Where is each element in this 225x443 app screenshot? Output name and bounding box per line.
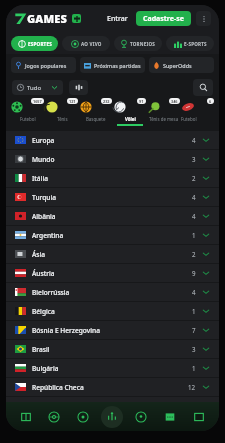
button[interactable]: Ásia xyxy=(6,245,219,263)
button[interactable]: SuperOdds xyxy=(149,57,214,73)
staticText: República Checa xyxy=(32,383,84,392)
staticText: 4 xyxy=(192,193,196,201)
staticText: 7 xyxy=(192,326,196,334)
button[interactable]: Brasil xyxy=(6,340,219,358)
button[interactable]: Apostas xyxy=(126,402,155,431)
staticText: 3 xyxy=(192,345,196,353)
staticText: Bósnia E Herzegovina xyxy=(32,326,100,335)
button[interactable]: Esportes xyxy=(68,402,97,431)
staticText: Basquete xyxy=(86,116,106,122)
button[interactable]: 232 xyxy=(79,98,113,131)
button[interactable]: Ao vivo xyxy=(40,402,68,431)
staticText: 1 xyxy=(192,231,196,239)
button[interactable]: República Checa xyxy=(6,378,219,396)
staticText: 1 xyxy=(192,364,196,372)
staticText: 4 xyxy=(192,212,196,220)
staticText: Ásia xyxy=(32,250,46,259)
staticText: Bulgária xyxy=(32,364,59,373)
staticText: SuperOdds xyxy=(163,62,192,69)
button[interactable]: Mais xyxy=(184,402,213,431)
staticText: Argentina xyxy=(32,231,64,240)
staticText: Bielorrússia xyxy=(32,288,70,297)
staticText: 91 xyxy=(139,99,144,104)
staticText: 12 xyxy=(188,383,196,391)
button[interactable]: Promoções xyxy=(72,14,81,23)
button[interactable]: 6 xyxy=(181,98,215,131)
button[interactable]: Albânia xyxy=(6,207,219,225)
staticText: Bélgica xyxy=(32,307,55,316)
staticText: Itália xyxy=(32,174,48,183)
button[interactable]: Filtros xyxy=(69,80,88,95)
staticText: TORNEIOS xyxy=(130,41,156,47)
button[interactable]: Chat xyxy=(155,402,184,431)
button[interactable]: Tudo xyxy=(12,80,63,95)
button[interactable]: Entrar xyxy=(103,11,132,27)
staticText: Turquia xyxy=(32,193,56,202)
staticText: 1 xyxy=(192,307,196,315)
staticText: Mundo xyxy=(32,155,55,164)
staticText: Brasil xyxy=(32,345,50,354)
button[interactable]: Turquia xyxy=(6,188,219,206)
staticText: 1657 xyxy=(33,99,42,104)
staticText: 2 xyxy=(192,174,196,182)
staticText: 346 xyxy=(171,99,178,104)
staticText: Futebol xyxy=(20,116,36,122)
button[interactable]: 121 xyxy=(45,98,79,131)
button[interactable]: Jogos populares xyxy=(11,57,76,73)
button[interactable]: Europa xyxy=(6,131,219,149)
staticText: 4 xyxy=(192,288,196,296)
button[interactable]: E-SPORTS xyxy=(166,36,214,51)
button[interactable]: Bulgária xyxy=(6,359,219,377)
button[interactable]: Estônia xyxy=(6,397,219,415)
staticText: 3 xyxy=(192,155,196,163)
button[interactable]: Itália xyxy=(6,169,219,187)
button[interactable]: Áustria xyxy=(6,264,219,282)
staticText: Tênis xyxy=(57,116,68,122)
staticText: Jogos populares xyxy=(25,62,67,69)
staticText: Futebol Americano xyxy=(181,116,215,122)
button[interactable]: Menu xyxy=(196,11,211,26)
button[interactable]: Destaques xyxy=(97,402,126,431)
button[interactable]: 1657 xyxy=(10,98,45,131)
staticText: 9 xyxy=(192,269,196,277)
staticText: Tudo xyxy=(27,84,42,92)
staticText: Cadastre-se xyxy=(143,14,184,24)
button[interactable]: Bósnia E Herzegovina xyxy=(6,321,219,339)
staticText: ESPORTES xyxy=(28,41,52,47)
staticText: 2 xyxy=(192,250,196,258)
button[interactable]: Mundo xyxy=(6,150,219,168)
staticText: 232 xyxy=(103,99,110,104)
staticText: Europa xyxy=(32,136,55,145)
button[interactable]: Argentina xyxy=(6,226,219,244)
staticText: Vôlei xyxy=(125,116,136,122)
staticText: AO VIVO xyxy=(81,41,102,47)
button[interactable]: Bélgica xyxy=(6,302,219,320)
staticText: Entrar xyxy=(107,14,128,24)
button[interactable]: TORNEIOS xyxy=(114,36,162,51)
staticText: 121 xyxy=(69,99,76,104)
button[interactable]: Buscar xyxy=(193,79,213,96)
staticText: Tênis de mesa xyxy=(149,116,179,122)
staticText: E-SPORTS xyxy=(184,41,207,47)
button[interactable]: 91 xyxy=(113,98,147,131)
button[interactable]: Cadastre-se xyxy=(136,11,191,26)
staticText: 6 xyxy=(209,99,212,104)
staticText: Albânia xyxy=(32,212,56,221)
staticText: Áustria xyxy=(32,269,55,278)
staticText: GAMES xyxy=(27,11,68,26)
button[interactable]: Próximas partidas xyxy=(80,57,145,73)
button[interactable]: ESPORTES xyxy=(11,36,58,51)
button[interactable]: Cassino xyxy=(12,402,40,431)
button[interactable]: AO VIVO xyxy=(62,36,110,51)
staticText: 4 xyxy=(192,136,196,144)
staticText: Próximas partidas xyxy=(94,62,141,69)
button[interactable]: 346 xyxy=(147,98,181,131)
button[interactable]: Bielorrússia xyxy=(6,283,219,301)
